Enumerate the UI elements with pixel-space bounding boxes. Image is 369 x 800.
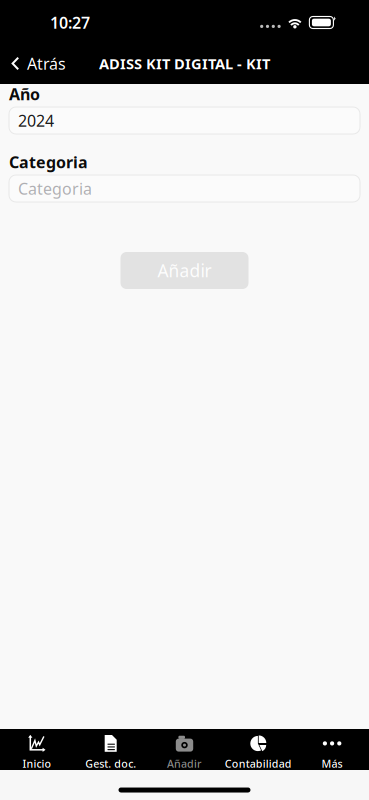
staticText: Inicio (22, 756, 51, 771)
button[interactable]: Más (295, 729, 369, 770)
staticText: Añadir (167, 756, 202, 771)
staticText: Año (9, 83, 40, 105)
staticText: Contabilidad (225, 756, 292, 771)
staticText: 10:27 (50, 12, 90, 33)
staticText: Categoria (18, 178, 92, 199)
staticText: Categoria (9, 151, 88, 173)
staticText: Atrás (27, 53, 66, 74)
staticText: Gest. doc. (85, 756, 136, 771)
button[interactable]: Gest. doc. (74, 729, 148, 770)
button[interactable]: Contabilidad (221, 729, 295, 770)
button[interactable]: Añadir (148, 729, 221, 770)
button[interactable]: Categoria (9, 175, 360, 202)
button[interactable]: Atrás (0, 45, 74, 82)
staticText: Añadir (157, 259, 211, 282)
button[interactable]: 2024 (9, 107, 360, 134)
staticText: 2024 (18, 110, 54, 131)
button[interactable]: Añadir (120, 252, 248, 289)
staticText: ADISS KIT DIGITAL - KIT (99, 54, 270, 73)
button[interactable]: Inicio (0, 729, 74, 770)
staticText: Más (322, 756, 343, 771)
